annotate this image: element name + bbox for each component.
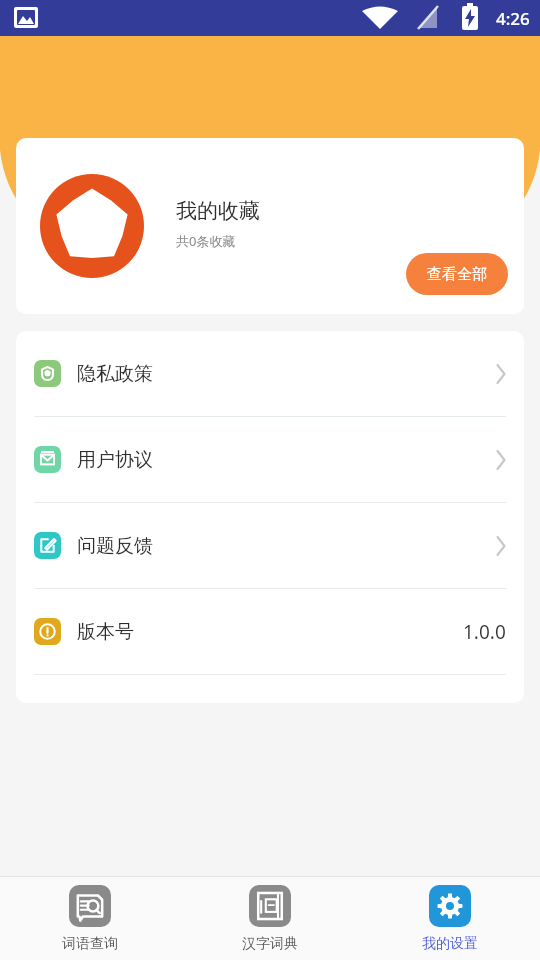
staticText: 用户协议 [77, 448, 153, 472]
button[interactable]: 查看全部 [406, 253, 508, 295]
button[interactable]: 我的收藏 [16, 138, 524, 314]
staticText: 4:26 [496, 7, 530, 30]
staticText: 共0条收藏 [176, 232, 236, 250]
staticText: 问题反馈 [77, 534, 153, 558]
staticText: 查看全部 [427, 265, 487, 284]
staticText: 版本号 [77, 620, 134, 644]
button[interactable]: 汉字词典 [180, 877, 360, 960]
staticText: 隐私政策 [77, 362, 153, 386]
button[interactable]: 用户协议 [16, 417, 524, 502]
button[interactable]: 词语查询 [0, 877, 180, 960]
staticText: 1.0.0 [463, 619, 506, 645]
staticText: 词语查询 [62, 935, 118, 953]
button[interactable]: 问题反馈 [16, 503, 524, 588]
button[interactable]: 我的设置 [360, 877, 540, 960]
staticText: 我的收藏 [176, 198, 260, 224]
staticText: 汉字词典 [242, 935, 298, 953]
button[interactable]: 版本号 [16, 589, 524, 674]
button[interactable]: 隐私政策 [16, 331, 524, 416]
staticText: 我的设置 [422, 935, 478, 953]
